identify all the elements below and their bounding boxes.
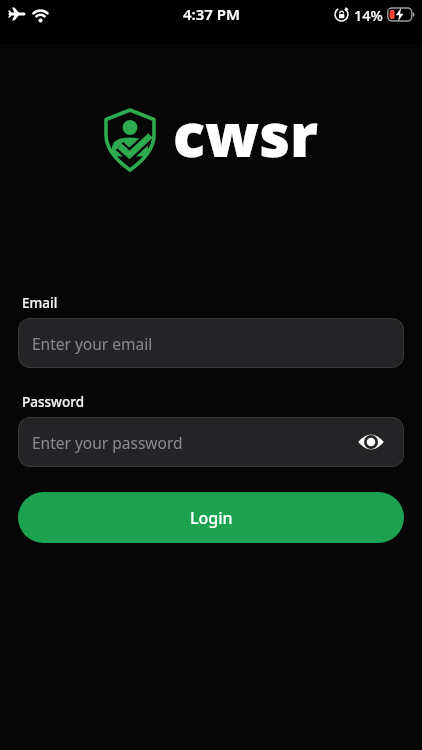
button[interactable]: Login	[18, 492, 404, 543]
button[interactable]	[358, 433, 384, 451]
staticText: 14%	[354, 5, 383, 25]
staticText: Enter your email	[32, 333, 153, 354]
staticText: Enter your password	[32, 432, 183, 453]
staticText: Password	[22, 393, 85, 411]
button[interactable]: Enter your password	[18, 417, 404, 467]
staticText: Login	[190, 507, 233, 529]
button[interactable]: Enter your email	[18, 318, 404, 368]
staticText: cwsr	[173, 93, 318, 174]
staticText: 4:37 PM	[183, 4, 240, 24]
staticText: Email	[22, 294, 58, 312]
